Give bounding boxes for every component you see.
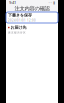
staticText: 下書きを保存 <box>8 13 32 18</box>
staticText: 注文内容の確認 <box>14 5 49 12</box>
staticText: 2024/01/01 12:00 <box>8 19 36 22</box>
staticText: 東京都渋谷区 <box>8 31 26 34</box>
staticText: 9:41 <box>9 0 16 5</box>
staticText: お届け先 <box>11 25 27 30</box>
staticText: ◦◦ ▮ <box>48 0 55 5</box>
